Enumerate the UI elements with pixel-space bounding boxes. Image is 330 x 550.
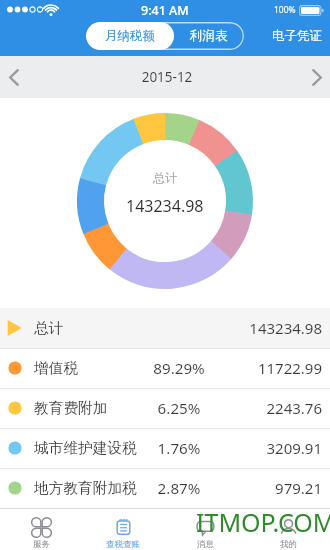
button[interactable]: 服务 [0,508,82,550]
staticText: 消息 [197,539,214,550]
staticText: 教育费附加 [34,399,146,418]
staticText: 143234.98 [212,318,322,338]
staticText: 11722.99 [212,358,322,378]
staticText: 电子凭证 [272,28,322,44]
staticText: 增值税 [34,359,146,378]
staticText: 100% [274,4,296,16]
staticText: 3209.91 [212,438,322,458]
button[interactable]: 我的 [247,508,330,550]
staticText: 89.29% [146,358,212,379]
staticText: 9:41 AM [141,2,189,19]
staticText: 地方教育附加税 [34,479,146,498]
staticText: 总计 [34,319,146,338]
staticText: 月纳税额 [105,28,155,44]
button[interactable]: 月纳税额 [86,22,174,50]
button[interactable]: 利润表 [174,22,244,50]
staticText: 利润表 [190,28,228,44]
staticText: 2243.76 [212,398,322,418]
staticText: 6.25% [146,398,212,419]
staticText: 服务 [33,539,50,550]
button[interactable]: Previous month [0,56,27,98]
staticText: 城市维护建设税 [34,439,146,458]
staticText: 1.76% [146,438,212,459]
staticText: 我的 [280,539,297,550]
staticText: 总计 [153,170,177,185]
staticText: 查税查账 [106,539,140,550]
button[interactable]: 消息 [164,508,247,550]
staticText: 979.21 [212,478,322,498]
staticText: 143234.98 [126,195,204,217]
button[interactable]: 增值税 [0,348,330,388]
button[interactable]: Next month [303,56,330,98]
staticText: 2015-12 [29,68,305,86]
button[interactable]: 城市维护建设税 [0,428,330,468]
button[interactable]: 查税查账 [82,508,164,550]
button[interactable]: 教育费附加 [0,388,330,428]
button[interactable]: 电子凭证 [272,22,322,50]
button[interactable]: 地方教育附加税 [0,468,330,508]
staticText: ITMOP.COM [196,505,330,539]
button[interactable]: 总计 [0,308,330,348]
staticText: 2.87% [146,478,212,499]
